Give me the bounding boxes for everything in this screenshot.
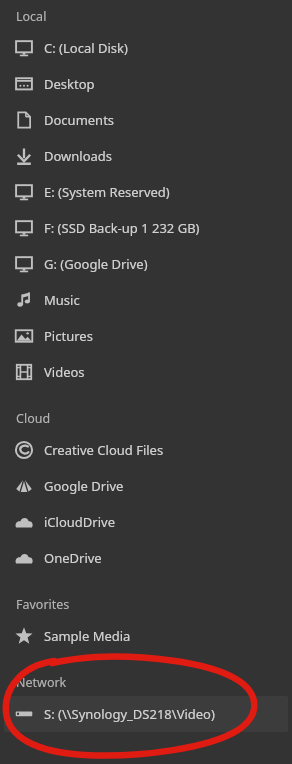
- staticText: E: (System Reserved): [44, 183, 170, 201]
- staticText: Documents: [44, 111, 115, 129]
- button[interactable]: OneDrive: [4, 540, 288, 576]
- staticText: Videos: [44, 363, 85, 381]
- staticText: OneDrive: [44, 549, 102, 567]
- button[interactable]: S: (\\Synology_DS218\Video): [4, 696, 288, 732]
- staticText: Google Drive: [44, 477, 124, 495]
- staticText: iCloudDrive: [44, 513, 115, 531]
- staticText: Sample Media: [44, 627, 131, 645]
- staticText: Desktop: [44, 75, 95, 93]
- staticText: F: (SSD Back-up 1 232 GB): [44, 219, 200, 237]
- staticText: Pictures: [44, 327, 93, 345]
- staticText: Creative Cloud Files: [44, 441, 164, 459]
- button[interactable]: Google Drive: [4, 468, 288, 504]
- button[interactable]: Downloads: [4, 138, 288, 174]
- button[interactable]: Desktop: [4, 66, 288, 102]
- button[interactable]: Music: [4, 282, 288, 318]
- staticText: Music: [44, 291, 80, 309]
- button[interactable]: iCloudDrive: [4, 504, 288, 540]
- button[interactable]: C: (Local Disk): [4, 30, 288, 66]
- staticText: G: (Google Drive): [44, 255, 148, 273]
- button[interactable]: Documents: [4, 102, 288, 138]
- staticText: Downloads: [44, 147, 113, 165]
- button[interactable]: Sample Media: [4, 618, 288, 654]
- button[interactable]: E: (System Reserved): [4, 174, 288, 210]
- button[interactable]: G: (Google Drive): [4, 246, 288, 282]
- button[interactable]: Creative Cloud Files: [4, 432, 288, 468]
- staticText: S: (\\Synology_DS218\Video): [44, 705, 215, 723]
- button[interactable]: Pictures: [4, 318, 288, 354]
- staticText: Cloud: [16, 410, 51, 427]
- button[interactable]: Videos: [4, 354, 288, 390]
- staticText: Local: [16, 8, 47, 25]
- button[interactable]: F: (SSD Back-up 1 232 GB): [4, 210, 288, 246]
- staticText: Favorites: [16, 596, 70, 613]
- staticText: C: (Local Disk): [44, 39, 128, 57]
- staticText: Network: [16, 674, 67, 691]
